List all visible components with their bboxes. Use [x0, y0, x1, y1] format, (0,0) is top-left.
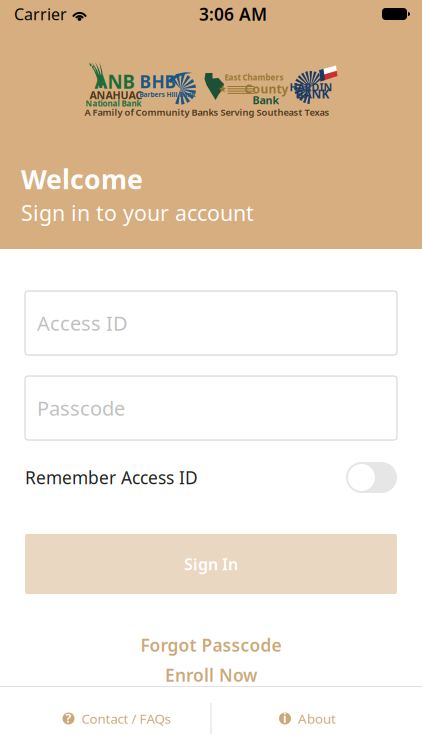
staticText: Enroll Now: [165, 663, 257, 686]
staticText: Contact / FAQs: [81, 710, 170, 727]
staticText: Welcome: [21, 161, 143, 197]
staticText: Passcode: [37, 395, 125, 421]
staticText: Sign In: [184, 553, 238, 575]
staticText: National Bank: [85, 98, 141, 109]
button[interactable]: Sign In: [25, 534, 397, 594]
button[interactable]: Enroll Now: [25, 665, 397, 685]
button[interactable]: ?: [0, 687, 211, 750]
button[interactable]: i: [211, 687, 422, 750]
staticText: Forgot Passcode: [140, 633, 281, 656]
staticText: Carrier: [14, 3, 67, 25]
button[interactable]: Forgot Passcode: [25, 635, 397, 655]
staticText: Remember Access ID: [25, 466, 198, 489]
staticText: ANB: [94, 69, 134, 94]
staticText: 3:06 AM: [199, 2, 267, 25]
staticText: East Chambers: [224, 72, 283, 83]
staticText: A Family of Community Banks Serving Sout…: [84, 106, 329, 118]
staticText: BHB: [139, 70, 176, 93]
staticText: i: [283, 710, 287, 726]
staticText: BANK: [295, 86, 329, 102]
button[interactable]: Remember Access ID: [346, 462, 397, 493]
staticText: HARDIN: [289, 80, 332, 94]
staticText: County: [244, 81, 288, 97]
staticText: ?: [65, 710, 71, 726]
staticText: About: [298, 710, 336, 727]
staticText: Bank: [252, 93, 279, 107]
staticText: Access ID: [37, 310, 128, 336]
staticText: Sign in to your account: [21, 199, 254, 227]
staticText: ANAHUAC: [89, 88, 142, 102]
staticText: Barbers Hill Bank: [139, 90, 195, 99]
